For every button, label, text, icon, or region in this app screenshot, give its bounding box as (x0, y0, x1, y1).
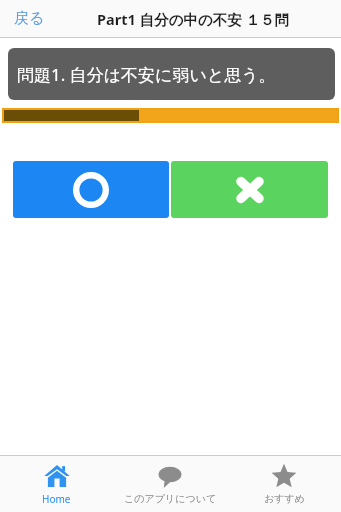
staticText: 戻る (14, 9, 45, 28)
button[interactable]: はい (13, 161, 169, 218)
button[interactable]: Home (0, 456, 113, 512)
staticText: Home (42, 492, 71, 506)
staticText: おすすめ (264, 492, 305, 505)
staticText: このアプリについて (124, 492, 217, 505)
button[interactable]: このアプリについて (113, 456, 227, 512)
staticText: 問題1. 自分は不安に弱いと思う。 (17, 63, 276, 86)
button[interactable]: 戻る (8, 3, 51, 34)
button[interactable]: おすすめ (227, 456, 341, 512)
button[interactable]: いいえ (171, 161, 328, 218)
staticText: Part1 自分の中の不安 １５問 (97, 9, 289, 29)
